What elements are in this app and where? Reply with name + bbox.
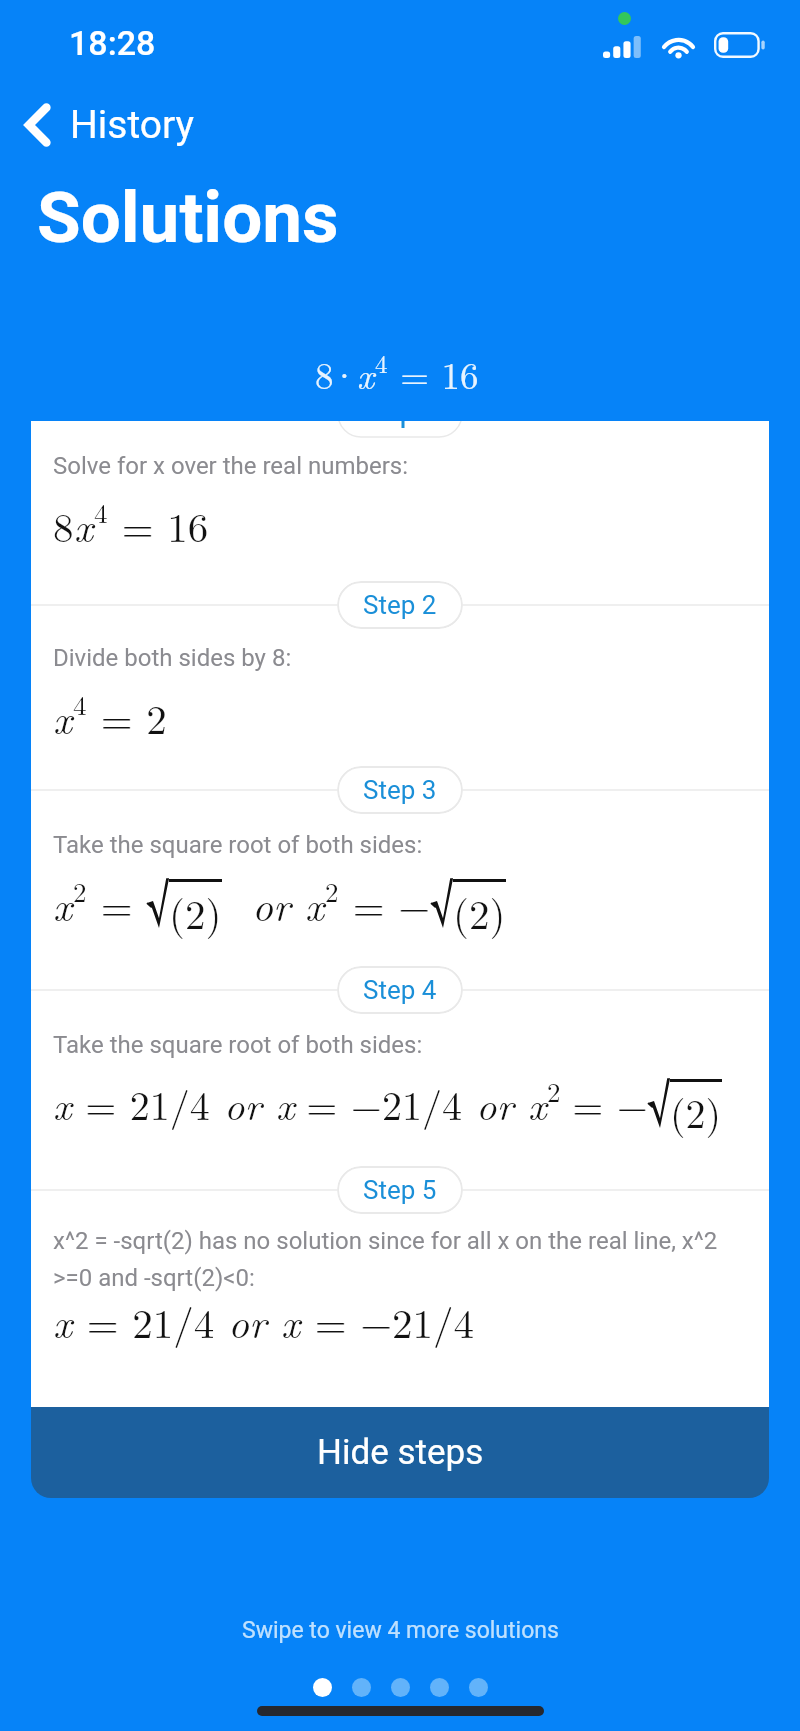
staticText: or [252, 875, 291, 933]
staticText: x [528, 1075, 547, 1132]
button[interactable]: Solution ${i + 1} [313, 1678, 332, 1697]
staticText: x [305, 875, 325, 933]
staticText: or [224, 1075, 262, 1132]
button[interactable]: Solution ${i + 1} [352, 1678, 371, 1697]
button[interactable]: Step 5 [337, 1166, 463, 1214]
staticText: = − [339, 875, 431, 933]
staticText: Divide both sides by 8: [53, 644, 292, 672]
staticText: x [53, 875, 73, 933]
staticText: 8 [53, 496, 74, 554]
button[interactable]: Back to History [0, 80, 215, 152]
staticText: x [53, 688, 73, 746]
staticText: x [53, 1292, 73, 1350]
staticText: x [276, 1075, 295, 1132]
staticText: = 16 [108, 496, 209, 554]
staticText: · [330, 347, 359, 399]
staticText: Step 3 [363, 775, 437, 805]
staticText: 18:28 [69, 23, 156, 63]
staticText [262, 1075, 276, 1132]
staticText: = −21/4 [301, 1292, 475, 1350]
staticText: Step 5 [363, 1175, 437, 1205]
staticText: History [70, 102, 195, 148]
staticText: 2 [325, 872, 339, 910]
staticText: = 21/4 [73, 1292, 228, 1350]
staticText: Step 2 [363, 590, 437, 620]
staticText: or [476, 1075, 514, 1132]
staticText: x [53, 1075, 72, 1132]
staticText: Solutions [37, 176, 339, 259]
staticText: (2) [169, 883, 222, 941]
button[interactable]: Step 4 [337, 966, 463, 1014]
staticText [514, 1075, 528, 1132]
staticText: Step 4 [363, 975, 437, 1005]
staticText: x [281, 1292, 301, 1350]
staticText: Swipe to view 4 more solutions [242, 1617, 559, 1644]
staticText: 4 [375, 345, 388, 380]
staticText: x [74, 496, 94, 554]
button[interactable]: Step 3 [337, 766, 463, 814]
staticText: = −21/4 [293, 1075, 462, 1132]
staticText: x [357, 347, 375, 399]
staticText: = 16 [388, 347, 479, 399]
staticText: 8 [315, 347, 334, 399]
staticText: (2) [453, 883, 506, 941]
button[interactable]: Solution ${i + 1} [430, 1678, 449, 1697]
staticText: Hide steps [317, 1432, 484, 1473]
staticText: 2 [73, 872, 87, 910]
staticText [267, 1292, 281, 1350]
button[interactable]: Hide steps [31, 1407, 769, 1498]
staticText: Take the square root of both sides: [53, 831, 423, 859]
staticText: x^2 = -sqrt(2) has no solution since for… [53, 1227, 755, 1292]
staticText: 4 [73, 685, 87, 723]
staticText: = [87, 875, 147, 933]
staticText: = 2 [87, 688, 167, 746]
staticText: 4 [94, 493, 108, 531]
button[interactable]: Step 1 [31, 421, 769, 443]
button[interactable]: Solution ${i + 1} [469, 1678, 488, 1697]
staticText: (2) [670, 1083, 722, 1140]
staticText: 2 [547, 1072, 561, 1110]
button[interactable]: Solution ${i + 1} [391, 1678, 410, 1697]
staticText [291, 875, 305, 933]
staticText: Solve for x over the real numbers: [53, 452, 408, 480]
staticText: or [228, 1292, 267, 1350]
staticText: = 21/4 [72, 1075, 210, 1132]
staticText: = − [559, 1075, 648, 1132]
staticText: Take the square root of both sides: [53, 1031, 423, 1059]
button[interactable]: Step 2 [337, 581, 463, 629]
